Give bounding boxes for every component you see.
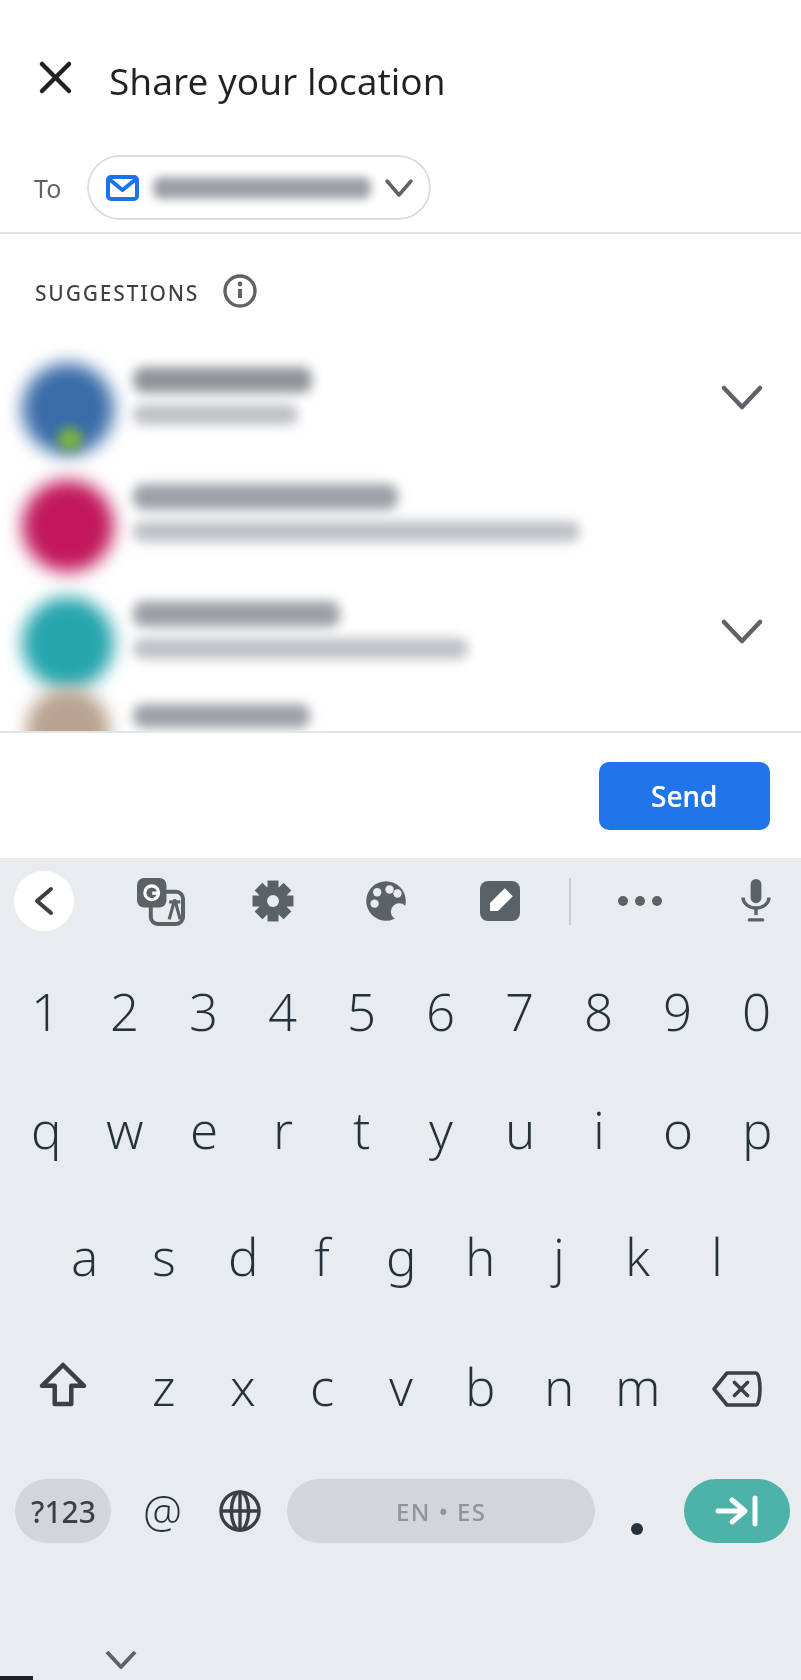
button[interactable] bbox=[0, 351, 801, 468]
button[interactable] bbox=[470, 871, 530, 931]
button[interactable]: o bbox=[639, 1072, 717, 1184]
button[interactable] bbox=[610, 871, 670, 931]
staticText: c bbox=[310, 1351, 335, 1420]
button[interactable] bbox=[87, 155, 431, 220]
button[interactable] bbox=[607, 1481, 667, 1541]
staticText: x bbox=[230, 1351, 256, 1420]
button[interactable] bbox=[130, 871, 190, 931]
staticText: d bbox=[228, 1221, 259, 1290]
button[interactable]: e bbox=[165, 1072, 243, 1184]
staticText: 8 bbox=[584, 976, 614, 1045]
staticText: 4 bbox=[268, 976, 298, 1045]
button[interactable]: h bbox=[441, 1199, 519, 1311]
button[interactable]: 3 bbox=[165, 954, 243, 1066]
button[interactable] bbox=[200, 1471, 280, 1551]
staticText: e bbox=[190, 1094, 219, 1163]
button[interactable] bbox=[356, 871, 416, 931]
staticText: 9 bbox=[663, 976, 693, 1045]
button[interactable]: p bbox=[718, 1072, 796, 1184]
staticText: h bbox=[465, 1221, 496, 1290]
staticText: g bbox=[386, 1221, 417, 1290]
staticText: p bbox=[742, 1094, 773, 1163]
button[interactable]: z bbox=[125, 1329, 203, 1441]
button[interactable] bbox=[0, 585, 801, 702]
button[interactable]: f bbox=[283, 1199, 361, 1311]
staticText: s bbox=[152, 1221, 176, 1290]
button[interactable]: @ bbox=[124, 1455, 202, 1567]
staticText: Send bbox=[651, 777, 718, 815]
button[interactable]: n bbox=[520, 1329, 598, 1441]
staticText: 7 bbox=[505, 976, 535, 1045]
button[interactable]: 5 bbox=[323, 954, 401, 1066]
button[interactable] bbox=[33, 55, 77, 99]
button[interactable]: r bbox=[244, 1072, 322, 1184]
button[interactable] bbox=[14, 871, 74, 931]
button[interactable]: s bbox=[125, 1199, 203, 1311]
staticText: 5 bbox=[347, 976, 377, 1045]
staticText: u bbox=[505, 1094, 536, 1163]
staticText: ?123 bbox=[31, 1491, 96, 1532]
button[interactable]: w bbox=[86, 1072, 164, 1184]
button[interactable] bbox=[684, 1479, 790, 1543]
staticText: o bbox=[663, 1094, 694, 1163]
staticText: t bbox=[353, 1094, 371, 1163]
staticText: y bbox=[429, 1094, 453, 1163]
button[interactable]: j bbox=[520, 1199, 598, 1311]
button[interactable]: u bbox=[481, 1072, 559, 1184]
button[interactable] bbox=[23, 1345, 103, 1425]
button[interactable]: m bbox=[599, 1329, 677, 1441]
staticText: EN • ES bbox=[396, 1495, 487, 1528]
button[interactable]: 6 bbox=[402, 954, 480, 1066]
button[interactable]: 1 bbox=[7, 954, 85, 1066]
button[interactable]: c bbox=[283, 1329, 361, 1441]
staticText: To bbox=[34, 171, 62, 205]
staticText: a bbox=[71, 1221, 99, 1290]
button[interactable]: 0 bbox=[718, 954, 796, 1066]
staticText: i bbox=[593, 1094, 605, 1163]
staticText: z bbox=[152, 1351, 176, 1420]
button[interactable]: 9 bbox=[639, 954, 717, 1066]
staticText: f bbox=[314, 1221, 330, 1290]
staticText: 1 bbox=[31, 976, 61, 1045]
staticText: SUGGESTIONS bbox=[35, 279, 200, 308]
staticText: w bbox=[106, 1094, 144, 1163]
button[interactable]: k bbox=[599, 1199, 677, 1311]
staticText: 3 bbox=[189, 976, 219, 1045]
staticText: v bbox=[389, 1351, 413, 1420]
button[interactable] bbox=[243, 871, 303, 931]
staticText: l bbox=[711, 1221, 723, 1290]
staticText: 6 bbox=[426, 976, 456, 1045]
button[interactable]: ?123 bbox=[15, 1479, 111, 1543]
button[interactable]: g bbox=[362, 1199, 440, 1311]
button[interactable]: i bbox=[560, 1072, 638, 1184]
staticText: 2 bbox=[110, 976, 140, 1045]
button[interactable]: 4 bbox=[244, 954, 322, 1066]
staticText: n bbox=[544, 1351, 575, 1420]
button[interactable]: 2 bbox=[86, 954, 164, 1066]
staticText: q bbox=[31, 1094, 62, 1163]
staticText: k bbox=[625, 1221, 651, 1290]
button[interactable]: t bbox=[323, 1072, 401, 1184]
staticText: m bbox=[615, 1351, 661, 1420]
button[interactable]: 8 bbox=[560, 954, 638, 1066]
button[interactable]: a bbox=[46, 1199, 124, 1311]
button[interactable]: 7 bbox=[481, 954, 559, 1066]
button[interactable]: v bbox=[362, 1329, 440, 1441]
staticText: b bbox=[465, 1351, 496, 1420]
staticText: @ bbox=[143, 1481, 183, 1541]
staticText: 0 bbox=[742, 976, 772, 1045]
button[interactable] bbox=[697, 1349, 777, 1429]
staticText: j bbox=[553, 1221, 565, 1290]
button[interactable] bbox=[0, 468, 801, 585]
button[interactable]: x bbox=[204, 1329, 282, 1441]
button[interactable] bbox=[726, 871, 786, 931]
staticText: r bbox=[273, 1094, 294, 1163]
button[interactable]: Send bbox=[599, 762, 770, 830]
button[interactable]: d bbox=[204, 1199, 282, 1311]
button[interactable]: l bbox=[678, 1199, 756, 1311]
staticText: Share your location bbox=[109, 55, 446, 105]
button[interactable]: b bbox=[441, 1329, 519, 1441]
button[interactable]: y bbox=[402, 1072, 480, 1184]
button[interactable]: EN • ES bbox=[287, 1479, 595, 1543]
button[interactable]: q bbox=[7, 1072, 85, 1184]
